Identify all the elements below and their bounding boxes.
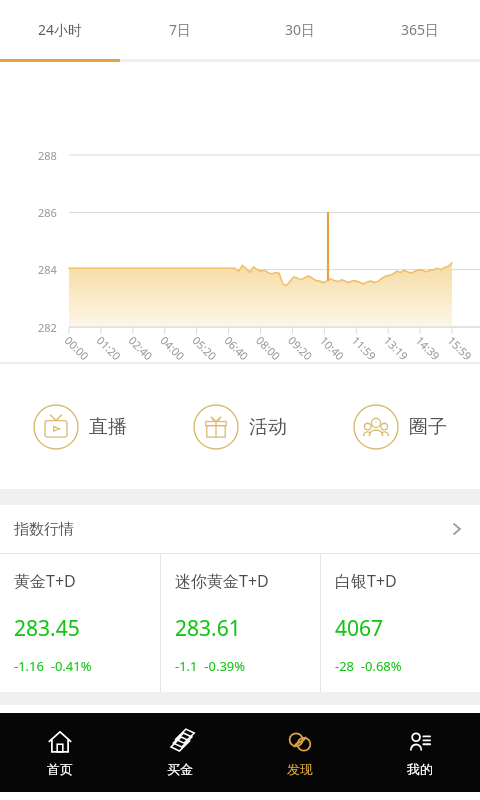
button[interactable]: 指数行情 bbox=[0, 505, 480, 553]
button[interactable]: 白银T+D bbox=[321, 554, 480, 692]
staticText: 白银T+D bbox=[335, 570, 397, 592]
button[interactable]: 发现 bbox=[240, 713, 360, 792]
staticText: 我的 bbox=[407, 761, 433, 777]
staticText: -1.16 -0.41% bbox=[14, 657, 92, 675]
button[interactable]: 我的 bbox=[360, 713, 480, 792]
button[interactable]: 首页 bbox=[0, 713, 120, 792]
staticText: 首页 bbox=[47, 761, 73, 777]
staticText: 365日 bbox=[401, 20, 440, 39]
button[interactable]: 黄金T+D bbox=[0, 554, 160, 692]
staticText: 4067 bbox=[335, 614, 384, 643]
staticText: 迷你黄金T+D bbox=[175, 570, 269, 592]
staticText: -28 -0.68% bbox=[335, 657, 402, 675]
button[interactable]: 迷你黄金T+D bbox=[161, 554, 320, 692]
button[interactable]: 30日 bbox=[240, 0, 360, 59]
staticText: 黄金T+D bbox=[14, 570, 76, 592]
button[interactable]: 24小时 bbox=[0, 0, 120, 59]
staticText: 283.45 bbox=[14, 614, 80, 643]
staticText: 圈子 bbox=[409, 415, 447, 439]
staticText: 指数行情 bbox=[14, 520, 74, 539]
button[interactable]: 7日 bbox=[120, 0, 240, 59]
button[interactable]: 买金 bbox=[120, 713, 240, 792]
staticText: 30日 bbox=[285, 20, 316, 39]
button[interactable]: 活动 bbox=[160, 364, 320, 489]
button[interactable]: 圈子 bbox=[320, 364, 480, 489]
button[interactable]: 直播 bbox=[0, 364, 160, 489]
button[interactable]: 365日 bbox=[360, 0, 480, 59]
staticText: 直播 bbox=[89, 415, 127, 439]
staticText: 7日 bbox=[169, 20, 192, 39]
staticText: -1.1 -0.39% bbox=[175, 657, 246, 675]
staticText: 活动 bbox=[249, 415, 287, 439]
staticText: 283.61 bbox=[175, 614, 241, 643]
staticText: 24小时 bbox=[38, 20, 83, 39]
staticText: 买金 bbox=[167, 761, 193, 777]
staticText: 发现 bbox=[287, 761, 313, 777]
